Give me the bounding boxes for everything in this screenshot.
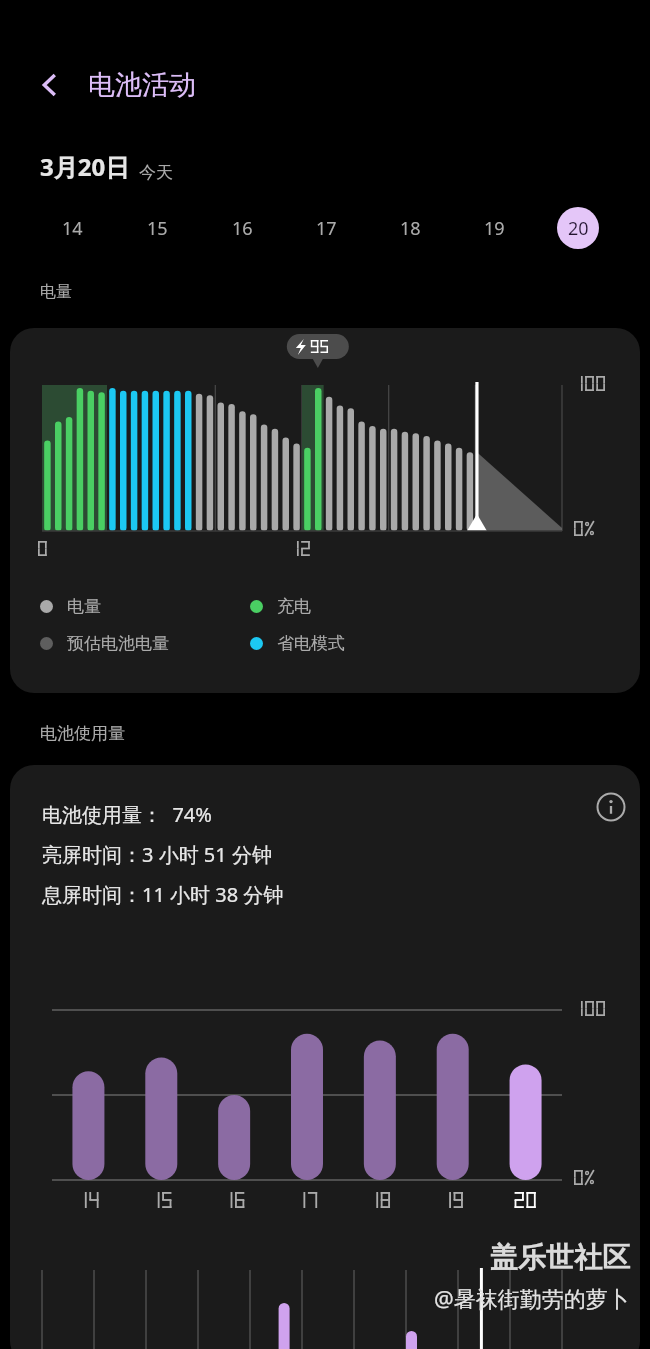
staticText: 3月20日	[40, 150, 130, 183]
button[interactable]: 19	[452, 204, 536, 252]
staticText: 电池活动	[88, 68, 196, 102]
staticText: 充电	[277, 596, 311, 617]
staticText: 今天	[139, 162, 173, 183]
staticText: 电量	[40, 282, 72, 302]
button[interactable]: 15	[115, 204, 200, 252]
staticText: 电池使用量	[40, 723, 125, 744]
staticText: 18	[400, 216, 421, 241]
button[interactable]: 充电	[250, 596, 311, 617]
staticText: 17	[316, 216, 337, 241]
button[interactable]: 17	[284, 204, 368, 252]
button[interactable]: 电量	[10, 328, 640, 693]
staticText: 息屏时间：11 小时 38 分钟	[42, 881, 284, 908]
staticText: 16	[232, 216, 253, 241]
button[interactable]: 预估电池电量	[40, 633, 250, 654]
staticText: 14	[62, 216, 83, 241]
button[interactable]: 14	[30, 204, 115, 252]
staticText: 省电模式	[277, 633, 345, 654]
staticText: @暑袜街勤劳的萝卜	[434, 1283, 630, 1313]
staticText: 20	[568, 216, 589, 241]
button[interactable]: Back	[26, 61, 74, 109]
button[interactable]: 18	[368, 204, 452, 252]
staticText: 亮屏时间：3 小时 51 分钟	[42, 841, 272, 868]
button[interactable]: 16	[200, 204, 284, 252]
staticText: 电池使用量： 74%	[42, 801, 212, 828]
button[interactable]: 省电模式	[250, 633, 345, 654]
staticText: 15	[147, 216, 168, 241]
staticText: 电量	[67, 596, 101, 617]
staticText: 预估电池电量	[67, 633, 169, 654]
staticText: 盖乐世社区	[490, 1240, 630, 1275]
button[interactable]: 20	[536, 204, 620, 252]
button[interactable]: Info	[588, 784, 634, 830]
button[interactable]: 电量	[40, 596, 250, 617]
staticText: 19	[484, 216, 505, 241]
